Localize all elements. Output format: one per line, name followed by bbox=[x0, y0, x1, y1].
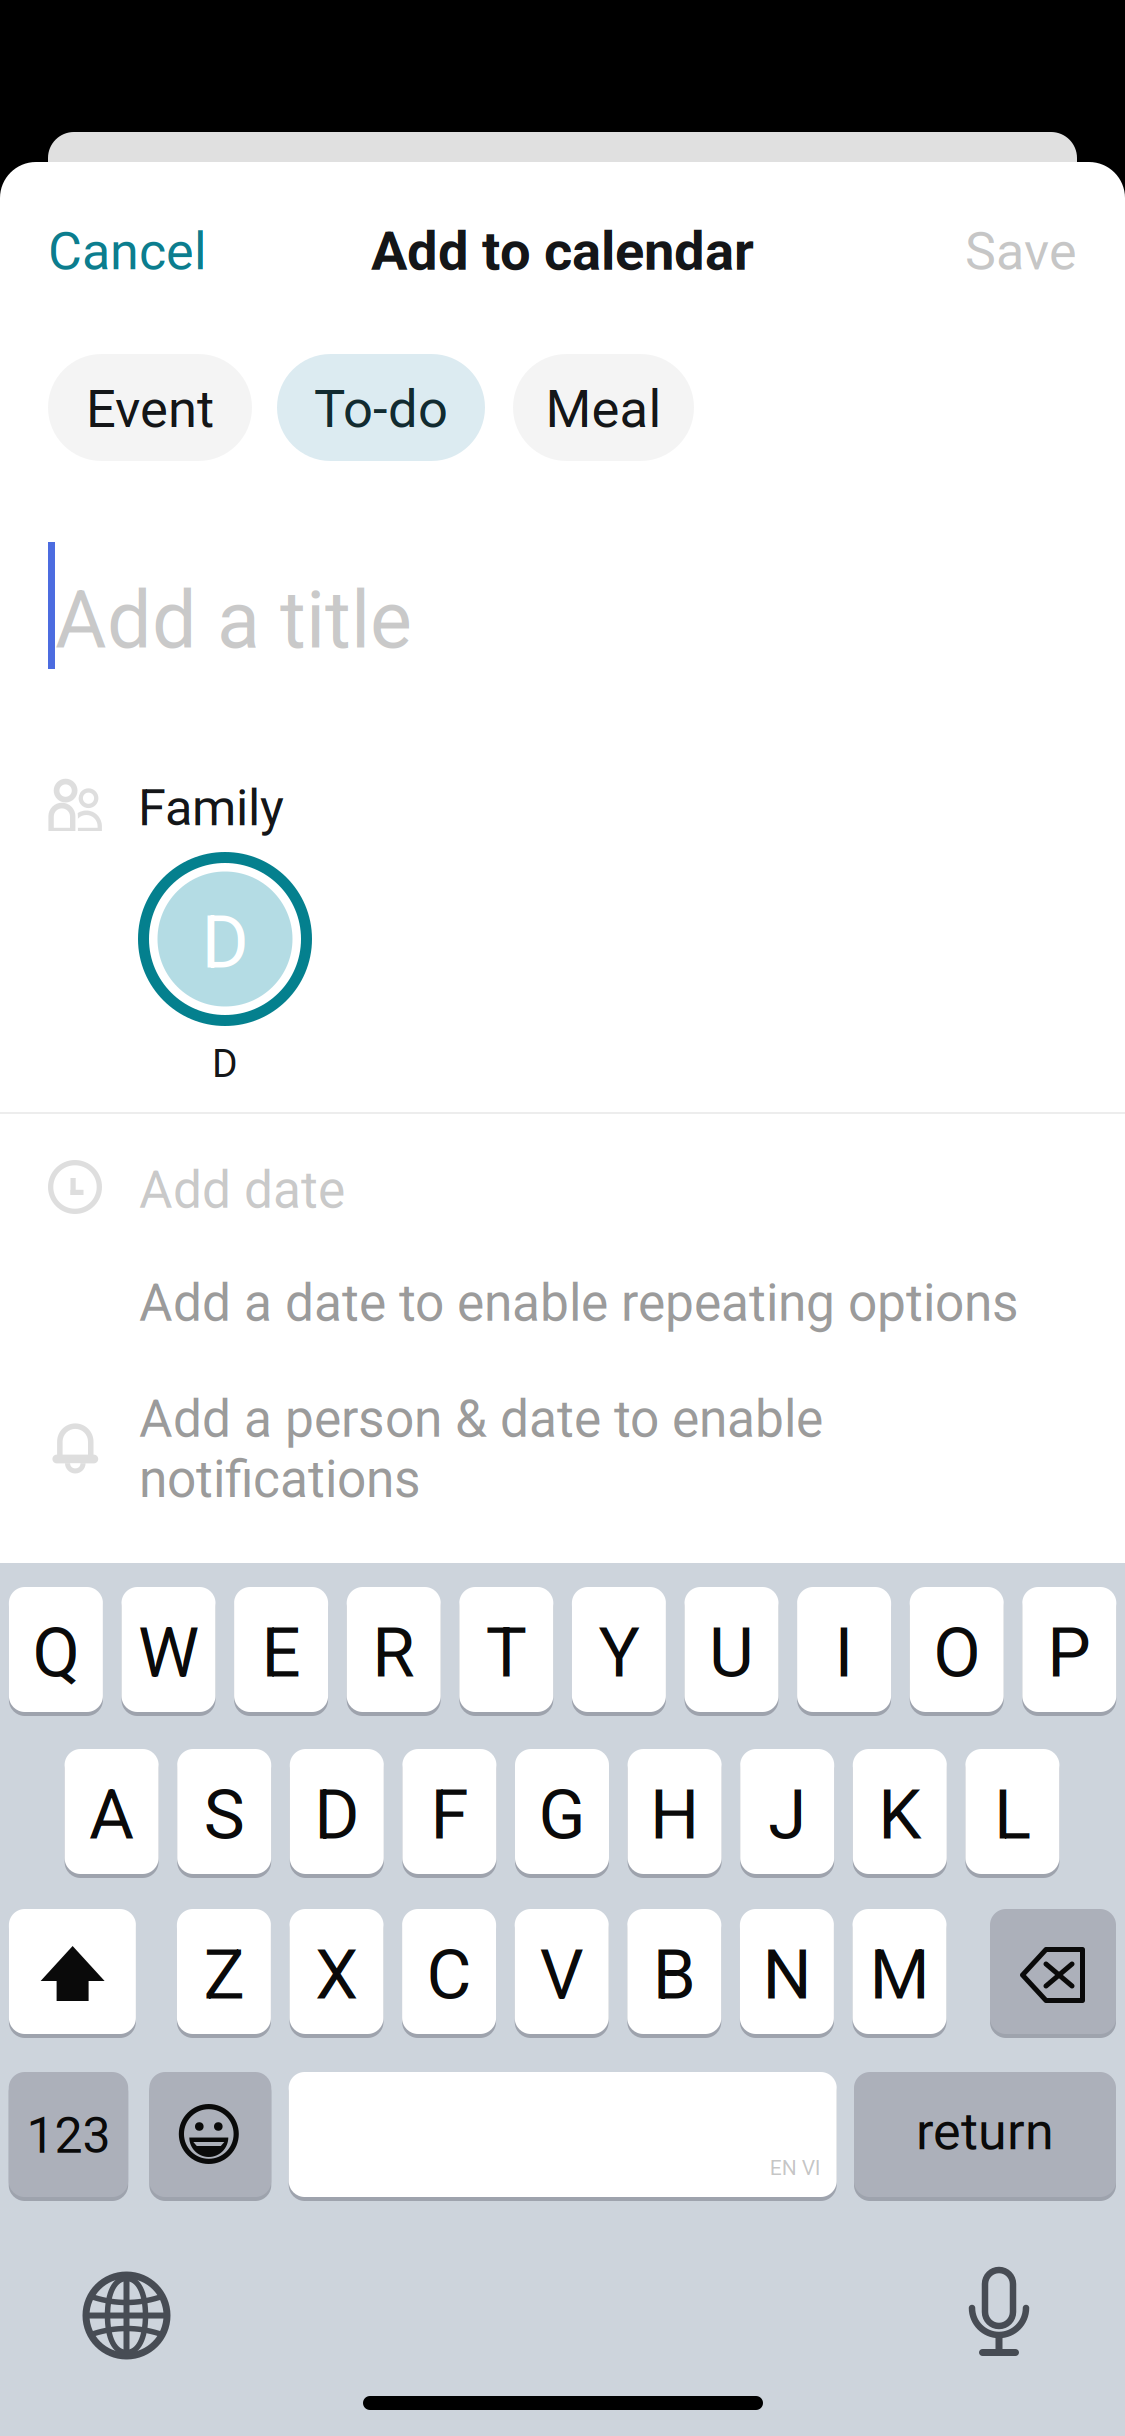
staticText: Save bbox=[965, 221, 1077, 282]
button[interactable]: Next keyboard bbox=[86, 2275, 167, 2356]
button[interactable]: B bbox=[627, 1909, 721, 2038]
button[interactable]: Add date bbox=[0, 1140, 1125, 1250]
staticText: H bbox=[650, 1774, 699, 1855]
button[interactable]: U bbox=[684, 1587, 778, 1716]
staticText: S bbox=[204, 1774, 245, 1855]
button[interactable]: Event bbox=[48, 354, 252, 461]
button[interactable]: M bbox=[852, 1909, 946, 2038]
staticText: Add a title bbox=[55, 574, 412, 667]
staticText: F bbox=[430, 1774, 468, 1855]
staticText: Event bbox=[86, 378, 214, 440]
staticText: R bbox=[372, 1612, 415, 1693]
staticText: To-do bbox=[314, 378, 448, 440]
button[interactable]: A bbox=[65, 1749, 159, 1878]
button[interactable]: T bbox=[459, 1587, 553, 1716]
staticText: V bbox=[540, 1934, 584, 2015]
button[interactable]: 123 bbox=[9, 2072, 128, 2201]
staticText: D bbox=[314, 1774, 359, 1855]
button[interactable]: G bbox=[515, 1749, 609, 1878]
button[interactable]: V bbox=[515, 1909, 609, 2038]
staticText: E bbox=[262, 1612, 301, 1693]
staticText: Family bbox=[138, 778, 284, 837]
staticText: P bbox=[1047, 1612, 1091, 1693]
button[interactable]: To-do bbox=[277, 354, 485, 461]
staticText: Y bbox=[598, 1612, 639, 1693]
button[interactable]: Cancel bbox=[30, 195, 230, 295]
staticText: O bbox=[933, 1612, 980, 1693]
button[interactable]: H bbox=[628, 1749, 722, 1878]
staticText: D bbox=[201, 901, 248, 985]
staticText: M bbox=[869, 1934, 929, 2015]
button[interactable]: D bbox=[138, 852, 312, 1092]
button[interactable]: F bbox=[402, 1749, 496, 1878]
staticText: Z bbox=[203, 1934, 244, 2015]
button[interactable]: Shift bbox=[9, 1909, 136, 2038]
staticText: Add a person & date to enable notificati… bbox=[139, 1389, 823, 1510]
button[interactable]: Delete bbox=[990, 1909, 1116, 2038]
staticText: U bbox=[709, 1612, 754, 1693]
button[interactable]: R bbox=[347, 1587, 441, 1716]
staticText: T bbox=[486, 1612, 527, 1693]
staticText: Meal bbox=[545, 378, 661, 440]
staticText: D bbox=[212, 1041, 238, 1086]
button[interactable]: I bbox=[797, 1587, 891, 1716]
button[interactable]: Emoji bbox=[149, 2072, 271, 2201]
button[interactable]: Meal bbox=[513, 354, 694, 461]
button[interactable]: return bbox=[854, 2072, 1116, 2201]
button[interactable]: Q bbox=[9, 1587, 103, 1716]
staticText: K bbox=[878, 1774, 921, 1855]
button[interactable]: Y bbox=[572, 1587, 666, 1716]
button[interactable]: Save bbox=[900, 195, 1077, 295]
staticText: N bbox=[762, 1934, 811, 2015]
staticText: X bbox=[315, 1934, 358, 2015]
staticText: Cancel bbox=[48, 221, 207, 282]
staticText: 123 bbox=[26, 2106, 110, 2165]
staticText: A bbox=[89, 1774, 134, 1855]
button[interactable]: S bbox=[177, 1749, 271, 1878]
button[interactable]: L bbox=[965, 1749, 1059, 1878]
staticText: Add a date to enable repeating options bbox=[139, 1273, 1019, 1333]
button[interactable]: Z bbox=[177, 1909, 271, 2038]
staticText: L bbox=[994, 1774, 1031, 1855]
staticText: Add date bbox=[139, 1160, 345, 1220]
staticText: I bbox=[835, 1612, 854, 1693]
button[interactable]: Space bbox=[289, 2072, 837, 2201]
button[interactable]: E bbox=[234, 1587, 328, 1716]
button[interactable]: X bbox=[289, 1909, 383, 2038]
button[interactable]: P bbox=[1022, 1587, 1116, 1716]
staticText: Add to calendar bbox=[371, 219, 754, 283]
button[interactable]: N bbox=[740, 1909, 834, 2038]
staticText: C bbox=[427, 1934, 472, 2015]
button[interactable]: W bbox=[121, 1587, 215, 1716]
button[interactable]: O bbox=[910, 1587, 1004, 1716]
button[interactable]: D bbox=[290, 1749, 384, 1878]
staticText: J bbox=[768, 1774, 806, 1855]
staticText: B bbox=[653, 1934, 696, 2015]
staticText: EN VI bbox=[770, 2155, 821, 2180]
button[interactable]: J bbox=[740, 1749, 834, 1878]
button[interactable]: K bbox=[853, 1749, 947, 1878]
staticText: W bbox=[138, 1612, 199, 1693]
staticText: Q bbox=[32, 1612, 79, 1693]
staticText: G bbox=[538, 1774, 585, 1855]
staticText: return bbox=[916, 2101, 1054, 2162]
button[interactable]: Dictation bbox=[970, 2270, 1028, 2360]
button[interactable]: C bbox=[402, 1909, 496, 2038]
button[interactable]: Add a title bbox=[0, 505, 1125, 705]
